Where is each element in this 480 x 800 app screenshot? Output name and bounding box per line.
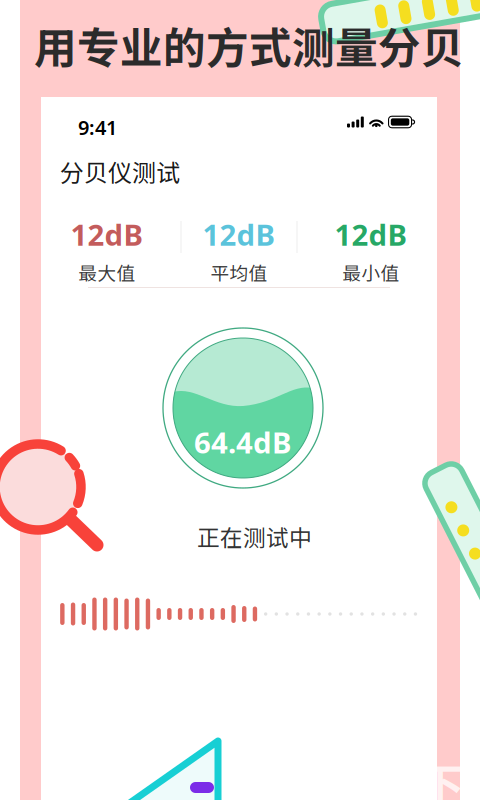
staticText: 用专业的方式测量分贝 <box>34 14 464 76</box>
staticText: 平均值 <box>210 259 267 286</box>
staticText: 正在测试中 <box>197 520 312 553</box>
staticText: 分贝仪测试 <box>60 154 180 189</box>
staticText: 最大值 <box>78 259 135 286</box>
staticText: 12dB <box>70 215 143 254</box>
staticText: 168下载 <box>333 748 480 800</box>
staticText: 12dB <box>334 215 407 254</box>
staticText: 64.4dB <box>194 422 292 461</box>
staticText: 12dB <box>202 215 275 254</box>
staticText: 最小值 <box>342 259 399 286</box>
staticText: 9:41 <box>78 114 117 141</box>
